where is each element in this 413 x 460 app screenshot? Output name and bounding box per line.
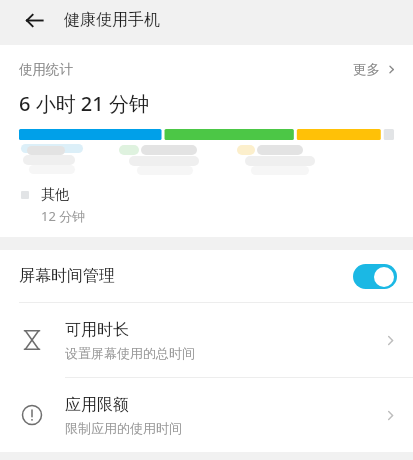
staticText: 应用限额 [65, 395, 129, 415]
button[interactable]: 可用时长 [0, 303, 413, 377]
staticText: 12 分钟 [41, 207, 86, 225]
staticText: 健康使用手机 [64, 10, 160, 30]
button[interactable]: 应用限额 [0, 378, 413, 452]
staticText: 更多 [353, 61, 380, 78]
staticText: 可用时长 [65, 320, 129, 340]
button[interactable]: 使用统计 [0, 45, 413, 82]
staticText: 屏幕时间管理 [19, 266, 115, 286]
button[interactable]: 屏幕时间管理 [0, 250, 413, 302]
staticText: 设置屏幕使用的总时间 [65, 345, 195, 361]
staticText: 6 小时 21 分钟 [19, 90, 149, 117]
button[interactable]: 屏幕时间管理开关 [353, 264, 397, 289]
button[interactable]: 返回 [16, 2, 52, 38]
staticText: 限制应用的使用时间 [65, 420, 182, 436]
staticText: 其他 [41, 186, 69, 204]
staticText: 使用统计 [19, 61, 73, 78]
